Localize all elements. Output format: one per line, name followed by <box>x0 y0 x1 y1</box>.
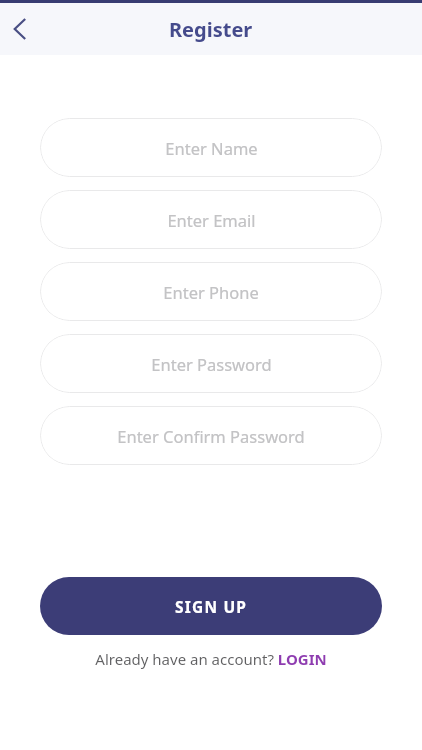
button[interactable]: Enter Phone <box>40 262 382 321</box>
button[interactable]: Already have an account? LOGIN <box>95 649 327 669</box>
button[interactable]: Enter Name <box>40 118 382 177</box>
staticText: Enter Email <box>167 209 256 231</box>
staticText: Enter Password <box>151 353 272 375</box>
button[interactable]: Back <box>0 5 48 53</box>
staticText: Enter Phone <box>163 281 259 303</box>
staticText: Enter Name <box>165 137 258 159</box>
staticText: Enter Confirm Password <box>117 425 305 447</box>
button[interactable]: SIGN UP <box>40 577 382 635</box>
staticText: SIGN UP <box>175 596 248 617</box>
staticText: Already have an account? LOGIN <box>95 649 327 669</box>
button[interactable]: Enter Password <box>40 334 382 393</box>
staticText: Register <box>169 16 253 43</box>
button[interactable]: Enter Confirm Password <box>40 406 382 465</box>
button[interactable]: Enter Email <box>40 190 382 249</box>
